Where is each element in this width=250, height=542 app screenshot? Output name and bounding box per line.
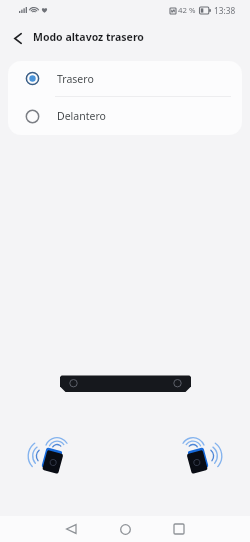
button[interactable]: Back: [51, 516, 91, 542]
staticText: Trasero: [57, 72, 94, 86]
button[interactable]: Home: [105, 516, 145, 542]
staticText: 42 %: [178, 5, 196, 16]
button[interactable]: Delantero: [8, 97, 242, 135]
staticText: Delantero: [57, 109, 106, 123]
staticText: Modo altavoz trasero: [33, 30, 144, 44]
staticText: 13:38: [214, 5, 236, 16]
button[interactable]: Recents: [159, 516, 199, 542]
button[interactable]: Back: [0, 22, 33, 55]
button[interactable]: Trasero: [8, 61, 242, 96]
